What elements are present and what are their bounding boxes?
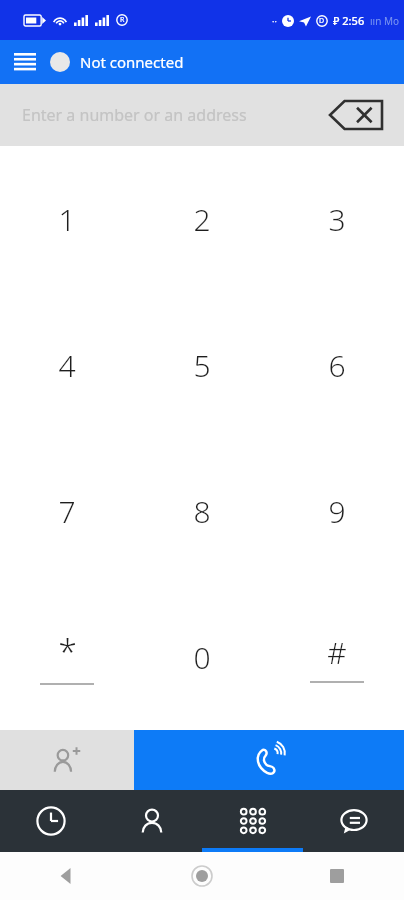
staticText: 9 [328,491,346,532]
button[interactable]: 8 [134,438,269,584]
staticText: Enter a number or an address [22,104,247,126]
button[interactable]: 3 [269,146,404,292]
button[interactable]: Open navigation menu [0,43,50,81]
staticText: 2 [193,199,211,240]
button[interactable]: Contacts [101,790,202,852]
staticText: 6 [328,345,346,386]
staticText: D [319,16,325,26]
button[interactable]: # [269,584,404,730]
button[interactable]: Home [134,852,269,900]
button[interactable]: * [0,584,134,730]
button[interactable]: Recent calls [0,790,101,852]
staticText: R [120,15,125,25]
button[interactable]: Not connected [50,44,404,80]
staticText: 4 [58,345,76,386]
staticText: ·· [272,15,277,27]
button[interactable]: Messages [303,790,404,852]
staticText: 1 [58,199,76,240]
button[interactable]: 2 [134,146,269,292]
button[interactable]: Call [134,730,404,790]
staticText: 5 [193,345,211,386]
button[interactable]: 4 [0,292,134,438]
staticText: * [58,629,77,675]
staticText: 0 [193,637,211,678]
staticText: 8 [193,491,211,532]
staticText: 3 [328,199,346,240]
staticText: 7 [58,491,76,532]
staticText: ₽ 2:56 [333,13,365,28]
button[interactable]: 7 [0,438,134,584]
button[interactable]: Backspace [324,95,388,135]
button[interactable]: 0 [134,584,269,730]
staticText: Not connected [80,52,184,72]
staticText: # [327,632,347,673]
button[interactable]: 6 [269,292,404,438]
button[interactable]: Dialpad [202,790,303,852]
button[interactable]: 5 [134,292,269,438]
button[interactable]: 1 [0,146,134,292]
button[interactable]: Back [0,852,134,900]
button[interactable]: 9 [269,438,404,584]
button[interactable]: Add contact [0,730,134,790]
staticText: ıın Mo [370,14,400,28]
button[interactable]: Recent apps [269,852,404,900]
